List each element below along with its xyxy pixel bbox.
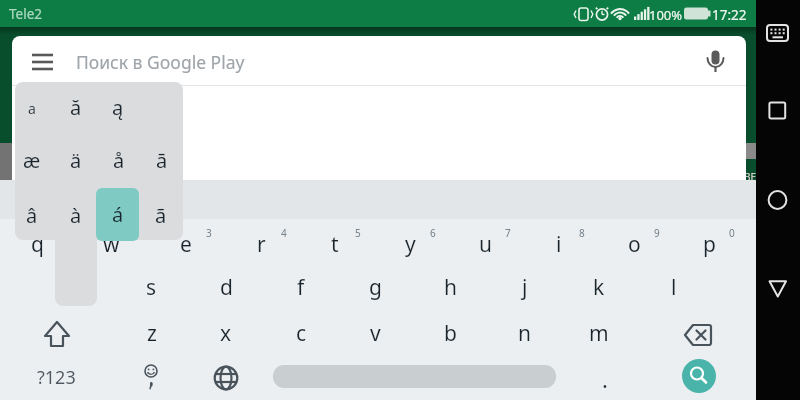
- button[interactable]: ã: [141, 198, 181, 232]
- staticText: Поиск в Google Play: [76, 50, 245, 74]
- staticText: x: [220, 319, 232, 348]
- staticText: m: [589, 319, 609, 348]
- staticText: 6: [430, 226, 436, 240]
- button[interactable]: ?123: [26, 360, 86, 394]
- staticText: ?123: [37, 365, 76, 390]
- staticText: 0: [729, 226, 735, 240]
- button[interactable]: r: [237, 226, 285, 262]
- staticText: .: [602, 364, 608, 394]
- button[interactable]: x: [202, 315, 250, 351]
- button[interactable]: a: [12, 93, 52, 123]
- button[interactable]: â: [12, 198, 52, 232]
- button[interactable]: g: [351, 269, 399, 305]
- button[interactable]: b: [426, 315, 474, 351]
- staticText: z: [147, 319, 157, 348]
- staticText: n: [518, 319, 531, 348]
- staticText: v: [370, 319, 381, 348]
- button[interactable]: [24, 48, 62, 78]
- button[interactable]: æ: [12, 143, 52, 177]
- button[interactable]: [682, 359, 716, 393]
- staticText: y: [405, 230, 416, 259]
- button[interactable]: å: [99, 143, 139, 177]
- staticText: a: [28, 99, 36, 118]
- staticText: å: [113, 147, 125, 174]
- staticText: æ: [23, 147, 41, 174]
- staticText: s: [146, 273, 157, 302]
- button[interactable]: e: [162, 226, 210, 262]
- staticText: ą: [112, 94, 124, 121]
- button[interactable]: ă: [56, 90, 96, 124]
- button[interactable]: [700, 44, 732, 78]
- button[interactable]: [761, 16, 795, 50]
- button[interactable]: .: [590, 364, 620, 394]
- staticText: ă: [70, 94, 82, 121]
- staticText: w: [103, 230, 120, 259]
- button[interactable]: f: [277, 269, 325, 305]
- button[interactable]: [208, 360, 244, 396]
- button[interactable]: á: [98, 197, 138, 231]
- button[interactable]: [761, 274, 794, 307]
- button[interactable]: [761, 184, 794, 217]
- button[interactable]: ä: [56, 143, 96, 177]
- staticText: 100%: [649, 6, 683, 24]
- staticText: b: [444, 319, 457, 348]
- button[interactable]: [12, 36, 746, 180]
- button[interactable]: [761, 95, 794, 128]
- button[interactable]: s: [127, 269, 175, 305]
- button[interactable]: [682, 320, 716, 350]
- staticText: 3: [206, 226, 212, 240]
- staticText: p: [703, 230, 716, 259]
- staticText: k: [593, 273, 605, 302]
- button[interactable]: y: [386, 226, 434, 262]
- button[interactable]: h: [426, 269, 474, 305]
- button[interactable]: o: [610, 226, 658, 262]
- button[interactable]: [132, 358, 172, 398]
- staticText: t: [331, 230, 339, 259]
- button[interactable]: u: [461, 226, 509, 262]
- staticText: d: [220, 273, 233, 302]
- button[interactable]: [273, 365, 556, 388]
- staticText: c: [296, 319, 307, 348]
- button[interactable]: p: [685, 226, 733, 262]
- button[interactable]: q: [13, 226, 61, 262]
- button[interactable]: ā: [142, 143, 182, 177]
- button[interactable]: v: [351, 315, 399, 351]
- staticText: á: [112, 201, 124, 228]
- staticText: â: [26, 202, 38, 229]
- staticText: i: [556, 230, 562, 259]
- staticText: 9: [654, 226, 660, 240]
- button[interactable]: d: [202, 269, 250, 305]
- staticText: h: [444, 273, 457, 302]
- button[interactable]: m: [575, 315, 623, 351]
- button[interactable]: l: [650, 269, 698, 305]
- staticText: q: [31, 230, 44, 259]
- button[interactable]: à: [56, 198, 96, 232]
- staticText: 5: [355, 226, 361, 240]
- staticText: l: [671, 273, 677, 302]
- button[interactable]: z: [128, 315, 176, 351]
- staticText: f: [297, 273, 305, 302]
- staticText: 17:22: [712, 6, 747, 24]
- staticText: e: [180, 230, 192, 259]
- staticText: j: [522, 273, 528, 302]
- button[interactable]: w: [87, 226, 135, 262]
- staticText: 7: [505, 226, 511, 240]
- staticText: à: [70, 202, 82, 229]
- staticText: ä: [70, 147, 82, 174]
- button[interactable]: c: [277, 315, 325, 351]
- button[interactable]: t: [311, 226, 359, 262]
- button[interactable]: ą: [98, 90, 138, 124]
- staticText: o: [628, 230, 641, 259]
- staticText: r: [257, 230, 266, 259]
- button[interactable]: i: [535, 226, 583, 262]
- staticText: g: [369, 273, 382, 302]
- button[interactable]: [38, 316, 76, 350]
- button[interactable]: k: [575, 269, 623, 305]
- button[interactable]: j: [501, 269, 549, 305]
- button[interactable]: [96, 188, 139, 241]
- staticText: ã: [155, 202, 167, 229]
- button[interactable]: n: [500, 315, 548, 351]
- staticText: BE: [744, 170, 757, 182]
